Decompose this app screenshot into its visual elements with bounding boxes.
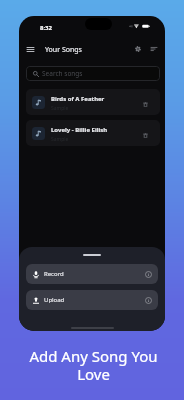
staticText: Sample [51, 105, 69, 112]
staticText: Add Any Song You Love [28, 346, 159, 384]
staticText: Record [44, 270, 64, 278]
button[interactable]: Record [26, 264, 158, 284]
button[interactable]: Menu [22, 41, 38, 57]
button[interactable]: Settings [130, 41, 146, 57]
staticText: Sample [51, 136, 69, 143]
button[interactable]: Delete [139, 129, 151, 141]
staticText: Birds of A Feather [51, 95, 105, 103]
staticText: Your Songs [45, 45, 82, 55]
button[interactable]: Lovely - Billie Eilish [26, 120, 160, 146]
staticText: Lovely - Billie Eilish [51, 126, 108, 134]
button[interactable]: Delete [139, 98, 151, 110]
staticText: 8:32 [40, 24, 52, 32]
staticText: Upload [44, 296, 65, 304]
button[interactable]: Upload [26, 290, 158, 310]
button[interactable]: Birds of A Feather [26, 89, 160, 115]
button[interactable]: Search songs [26, 66, 160, 81]
staticText: Search songs [42, 69, 83, 78]
button[interactable]: Sort [146, 41, 162, 57]
